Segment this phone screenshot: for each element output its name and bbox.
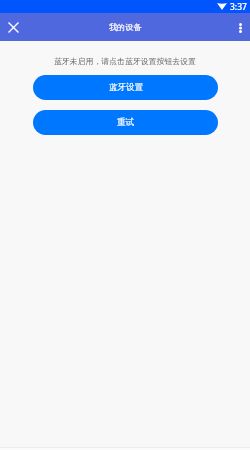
button[interactable]: 蓝牙设置 [33,75,218,100]
button[interactable]: 重试 [33,110,218,135]
staticText: 重试 [117,117,134,128]
staticText: 蓝牙未启用，请点击蓝牙设置按钮去设置 [0,56,250,66]
button[interactable]: More options [231,13,250,41]
staticText: 我的设备 [109,22,142,32]
staticText: 蓝牙设置 [109,82,143,93]
staticText: 3:37 [230,1,247,13]
button[interactable]: Close [0,13,27,41]
